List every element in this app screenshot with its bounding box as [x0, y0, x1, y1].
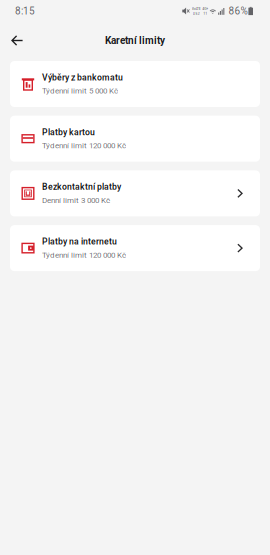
button[interactable]: Platby na internetu: [10, 225, 260, 271]
staticText: Platby kartou: [42, 127, 95, 137]
staticText: Týdenní limit 5 000 Kč: [42, 86, 118, 96]
staticText: Týdenní limit 120 000 Kč: [42, 141, 126, 150]
button[interactable]: Back: [3, 28, 31, 53]
staticText: Bezkontaktní platby: [42, 182, 121, 192]
staticText: Týdenní limit 120 000 Kč: [42, 250, 126, 260]
staticText: Karetní limity: [105, 35, 165, 46]
staticText: 86%: [228, 5, 247, 17]
staticText: LTE2: [193, 11, 200, 16]
staticText: Výběry z bankomatu: [42, 72, 123, 83]
button[interactable]: Výběry z bankomatu: [10, 61, 260, 107]
staticText: 11: [203, 11, 207, 16]
button[interactable]: Bezkontaktní platby: [10, 170, 260, 216]
staticText: 4G+: [202, 6, 208, 11]
staticText: Platby na internetu: [42, 236, 117, 247]
staticText: VoLTE: [192, 6, 201, 11]
button[interactable]: Platby kartou: [10, 116, 260, 162]
staticText: Denní limit 3 000 Kč: [42, 196, 110, 205]
staticText: 8:15: [15, 5, 35, 17]
